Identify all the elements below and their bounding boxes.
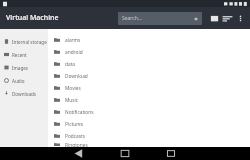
staticText: Music: [65, 97, 79, 104]
button[interactable]: data: [48, 58, 250, 70]
button[interactable]: Ringtones: [48, 142, 250, 147]
button[interactable]: Back: [71, 147, 87, 160]
button[interactable]: Images: [0, 61, 48, 74]
staticText: android: [65, 49, 83, 56]
staticText: Downloads: [12, 91, 37, 97]
button[interactable]: Download: [48, 70, 250, 82]
button[interactable]: alarms: [48, 34, 250, 46]
staticText: Images: [12, 65, 29, 71]
button[interactable]: Pictures: [48, 118, 250, 130]
staticText: Search...: [122, 15, 142, 22]
staticText: Notifications: [65, 109, 94, 116]
staticText: Movies: [65, 85, 81, 92]
staticText: Recent: [12, 52, 27, 58]
button[interactable]: Notifications: [48, 106, 250, 118]
staticText: data: [65, 61, 76, 68]
button[interactable]: Audio: [0, 74, 48, 87]
button[interactable]: Sort: [221, 12, 234, 25]
staticText: Ringtones: [65, 142, 88, 147]
button[interactable]: Downloads: [0, 87, 48, 100]
button[interactable]: Search...: [118, 12, 202, 25]
button[interactable]: Home: [117, 147, 133, 160]
button[interactable]: Grid view: [208, 12, 221, 25]
staticText: Audio: [12, 78, 25, 84]
button[interactable]: Recents: [163, 147, 179, 160]
button[interactable]: Movies: [48, 82, 250, 94]
button[interactable]: Recent: [0, 48, 48, 61]
staticText: Download: [65, 73, 88, 80]
button[interactable]: android: [48, 46, 250, 58]
button[interactable]: Internal storage: [0, 35, 48, 48]
staticText: Pictures: [65, 121, 84, 128]
staticText: alarms: [65, 37, 81, 44]
button[interactable]: More options: [234, 12, 247, 25]
staticText: Internal storage: [12, 39, 47, 45]
button[interactable]: Music: [48, 94, 250, 106]
staticText: Podcasts: [65, 133, 86, 140]
staticText: Virtual Machine: [6, 13, 59, 23]
button[interactable]: Podcasts: [48, 130, 250, 142]
